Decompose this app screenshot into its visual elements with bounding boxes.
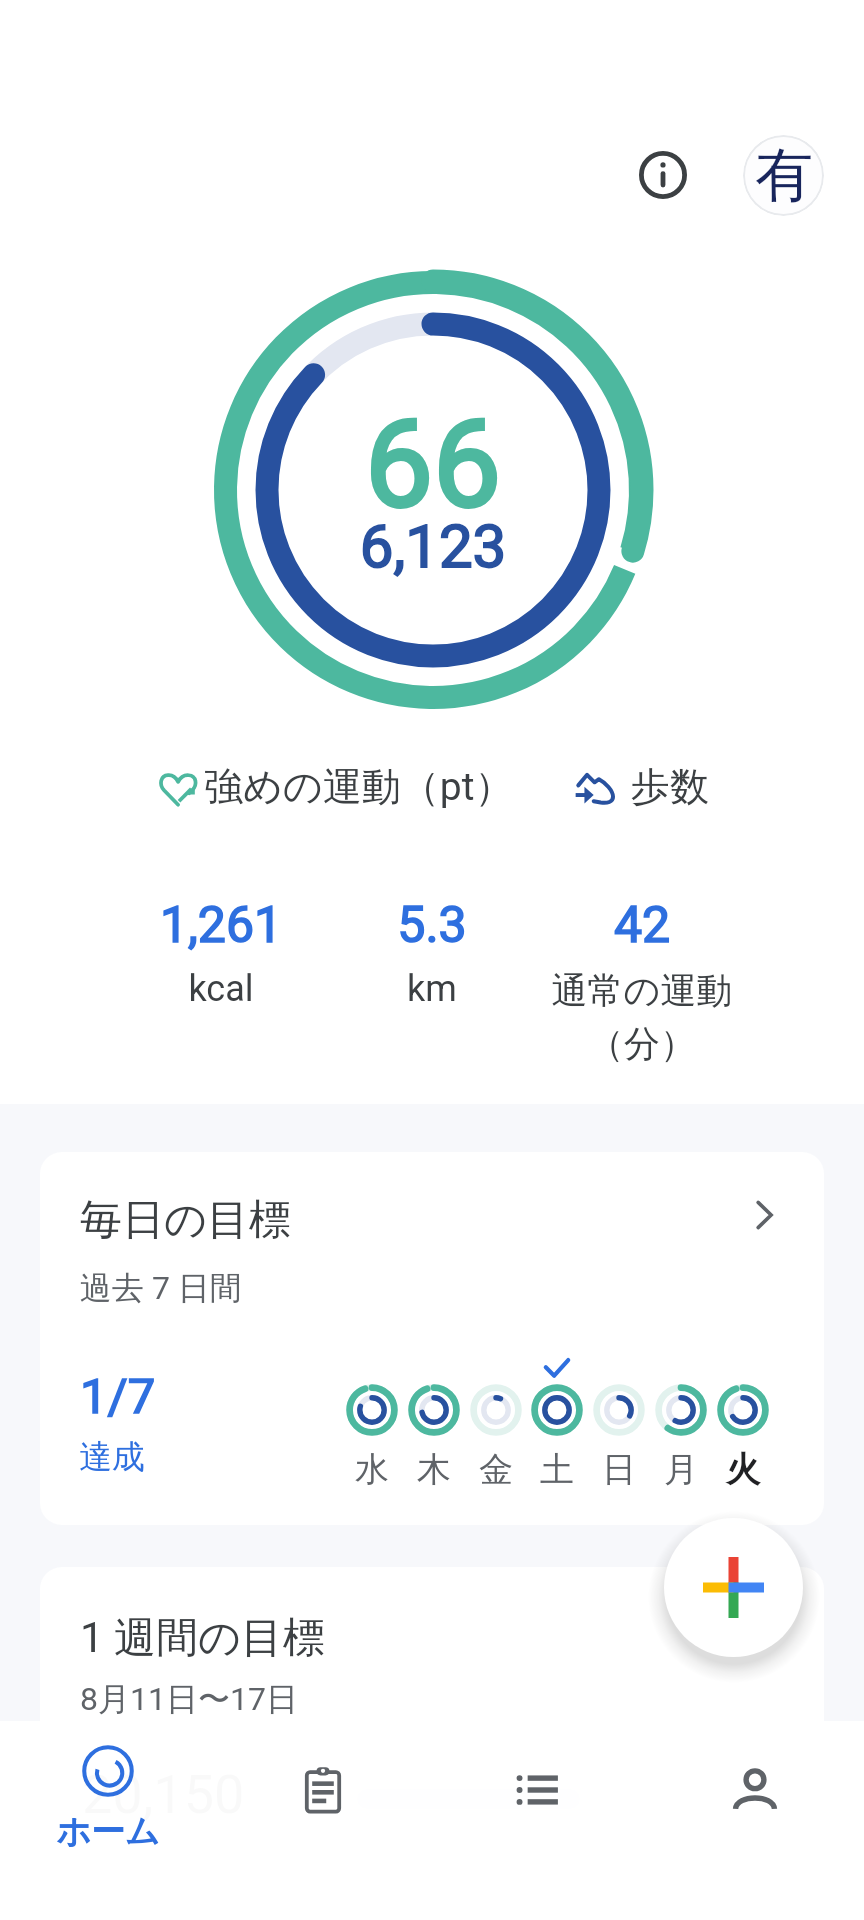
staticText: 水 [355, 1448, 389, 1491]
staticText: 通常の運動 （分） [502, 968, 782, 1066]
button[interactable]: 毎日の目標 [40, 1152, 824, 1525]
staticText: 歩数 [631, 762, 709, 811]
staticText: 日 [602, 1448, 636, 1491]
button[interactable]: Home [0, 1721, 216, 1920]
staticText: 毎日の目標 [80, 1194, 291, 1247]
staticText: 5.3 [292, 896, 572, 955]
staticText: 1,261 [81, 896, 361, 955]
staticText: 8月11日〜17日 [80, 1679, 298, 1719]
staticText: 過去 7 日間 [80, 1268, 242, 1308]
staticText: 土 [540, 1448, 574, 1491]
button[interactable]: Profile [647, 1721, 863, 1920]
staticText: 20,150 [82, 1763, 245, 1826]
staticText: 1/7 [80, 1368, 156, 1425]
staticText: 火 [726, 1448, 760, 1491]
staticText: 有 [755, 139, 813, 212]
staticText: 1 週間の目標 [80, 1612, 326, 1665]
button[interactable]: Add [664, 1518, 803, 1657]
staticText: 6,123 [193, 511, 673, 581]
button[interactable]: Journal [215, 1721, 431, 1920]
staticText: kcal [81, 968, 361, 1010]
staticText: 強めの運動（pt） [204, 762, 514, 811]
staticText: ホーム [0, 1810, 216, 1853]
staticText: 42 [502, 896, 782, 955]
button[interactable]: Browse [431, 1721, 647, 1920]
staticText: 達成 [79, 1436, 145, 1478]
button[interactable]: 1 週間の目標 [40, 1567, 824, 1897]
staticText: 木 [417, 1448, 451, 1491]
button[interactable]: Info [631, 143, 695, 207]
button[interactable]: 有 [743, 135, 824, 216]
staticText: km [292, 968, 572, 1010]
staticText: 月 [664, 1448, 698, 1491]
staticText: 金 [479, 1448, 513, 1491]
staticText: 66 [193, 394, 673, 536]
